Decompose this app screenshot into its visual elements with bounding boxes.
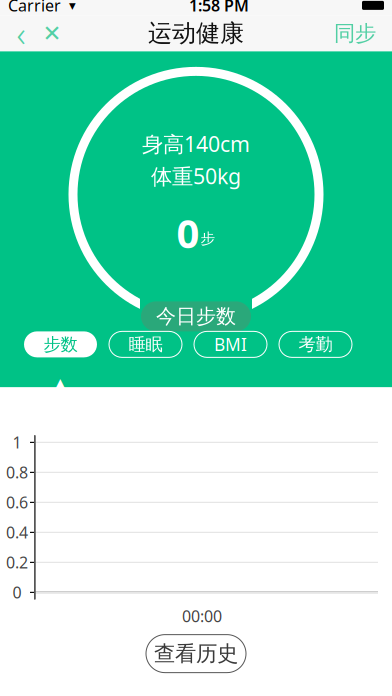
button[interactable]: 睡眠 (109, 331, 182, 357)
staticText: 00:00 (182, 605, 222, 627)
staticText: 步 (200, 230, 215, 248)
staticText: 1 (12, 432, 21, 453)
staticText: 0.8 (6, 462, 28, 483)
staticText: 今日步数 (156, 304, 236, 329)
button[interactable]: Back (6, 16, 36, 50)
staticText: BMI (214, 333, 247, 356)
button[interactable]: 查看历史 (146, 635, 246, 673)
staticText: Carrier (8, 0, 61, 16)
staticText: ▲ (52, 373, 68, 397)
button[interactable]: 考勤 (279, 331, 352, 357)
staticText: 考勤 (298, 334, 332, 355)
button[interactable]: 今日步数 (141, 301, 251, 331)
staticText: 0 (176, 206, 199, 259)
staticText: 步数 (43, 334, 77, 355)
staticText: 0.2 (6, 552, 28, 573)
staticText: 1:58 PM (189, 0, 249, 16)
staticText: 同步 (334, 20, 376, 46)
staticText: 查看历史 (154, 640, 238, 667)
staticText: 睡眠 (128, 334, 162, 355)
staticText: 身高140cm (142, 129, 250, 158)
staticText: ▾ (69, 0, 76, 13)
staticText: ‹ (16, 10, 25, 56)
button[interactable]: BMI (194, 331, 267, 357)
button[interactable]: Close (36, 16, 68, 50)
staticText: 0.4 (6, 522, 28, 543)
staticText: 运动健康 (148, 19, 244, 48)
button[interactable]: 同步 (324, 16, 386, 50)
staticText: 0.6 (6, 492, 28, 513)
staticText: ✕ (42, 20, 61, 46)
staticText: 0 (12, 582, 21, 603)
staticText: 体重50kg (151, 162, 241, 190)
button[interactable]: 步数 (24, 331, 97, 357)
